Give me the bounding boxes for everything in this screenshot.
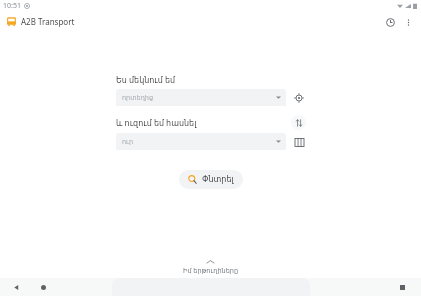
staticText: Ես մեկնում եմ	[116, 74, 176, 85]
button[interactable]: Expand my routes	[0, 260, 421, 278]
button[interactable]: Pick on map	[292, 135, 306, 149]
button[interactable]: որտեղից	[116, 89, 286, 106]
button[interactable]: Home	[36, 280, 50, 294]
button[interactable]: A2B Transport	[6, 16, 75, 27]
staticText: 10:51	[3, 1, 21, 11]
button[interactable]: Փնտրել	[179, 170, 243, 189]
staticText: Փնտրել	[202, 175, 234, 184]
staticText: որտեղից	[122, 94, 154, 102]
button[interactable]: History	[381, 13, 399, 31]
button[interactable]: Back	[9, 280, 23, 294]
button[interactable]: Swap origin and destination	[291, 115, 306, 130]
staticText: A2B Transport	[21, 16, 75, 27]
staticText: ուր	[122, 138, 134, 146]
staticText: և ուզում եմ հասնել	[116, 117, 197, 128]
button[interactable]: ուր	[116, 133, 286, 150]
button[interactable]: My location	[292, 91, 306, 105]
button[interactable]: Recent apps	[395, 280, 409, 294]
button[interactable]: More options	[399, 13, 417, 31]
staticText: Իմ երթուղիները	[183, 266, 239, 275]
